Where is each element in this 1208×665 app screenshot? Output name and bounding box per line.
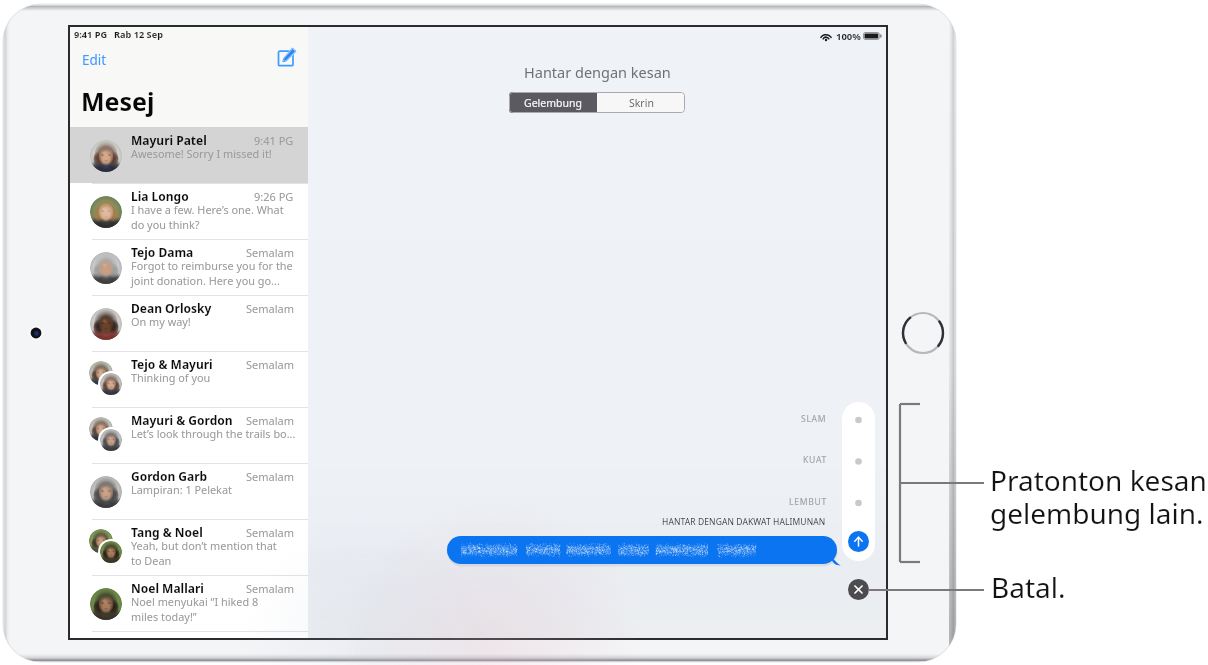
button[interactable]: Gordon Garb bbox=[70, 463, 308, 519]
staticText: joint donation. Here you go... bbox=[131, 273, 280, 288]
button[interactable]: Lia Longo bbox=[70, 183, 308, 239]
staticText: Tejo Dama bbox=[131, 244, 194, 260]
button[interactable]: Send bbox=[848, 531, 869, 552]
staticText: 100% bbox=[836, 30, 861, 43]
staticText: Batal. bbox=[991, 568, 1066, 606]
staticText: SLAM bbox=[801, 413, 827, 425]
staticText: Mayuri Patel bbox=[131, 132, 207, 148]
button[interactable]: Mayuri & Gordon bbox=[70, 407, 308, 463]
staticText: Dean Orlosky bbox=[131, 300, 212, 316]
staticText: Mesej bbox=[81, 84, 155, 118]
staticText: Thinking of you bbox=[131, 370, 211, 385]
staticText: Yeah, but don’t mention that bbox=[131, 538, 277, 553]
button[interactable]: Dean Orlosky bbox=[70, 295, 308, 351]
button[interactable]: Compose new message bbox=[277, 47, 299, 69]
staticText: Semalam bbox=[246, 469, 294, 484]
staticText: Lampiran: 1 Pelekat bbox=[131, 482, 232, 497]
button[interactable]: Tejo & Mayuri bbox=[70, 351, 308, 407]
staticText: Semalam bbox=[246, 357, 294, 372]
staticText: miles today!” bbox=[131, 609, 197, 624]
staticText: Tang & Noel bbox=[131, 524, 203, 540]
staticText: Noel menyukai “I hiked 8 bbox=[131, 594, 259, 609]
staticText: Rab 12 Sep bbox=[114, 28, 163, 41]
staticText: KUAT bbox=[803, 454, 827, 466]
button[interactable]: Mayuri Patel bbox=[70, 127, 308, 183]
button[interactable]: Gelembung bbox=[509, 92, 597, 113]
staticText: do you think? bbox=[131, 217, 200, 232]
staticText: 9:26 PG bbox=[254, 189, 294, 204]
button[interactable]: Tang & Noel bbox=[70, 519, 308, 575]
staticText: Semalam bbox=[246, 413, 294, 428]
staticText: Semalam bbox=[246, 525, 294, 540]
staticText: 9:41 PG bbox=[254, 133, 294, 148]
staticText: Hantar dengan kesan bbox=[524, 62, 671, 82]
button[interactable]: Edit bbox=[76, 47, 113, 73]
staticText: 9:41 PG bbox=[74, 28, 108, 41]
button[interactable]: Noel Mallari bbox=[70, 575, 308, 631]
staticText: Semalam bbox=[246, 301, 294, 316]
button[interactable]: Tejo Dama bbox=[70, 239, 308, 295]
staticText: Forgot to reimburse you for the bbox=[131, 258, 293, 273]
staticText: Gordon Garb bbox=[131, 468, 208, 484]
staticText: Lia Longo bbox=[131, 188, 189, 204]
staticText: Skrin bbox=[629, 96, 654, 110]
staticText: Mayuri & Gordon bbox=[131, 412, 233, 428]
staticText: Semalam bbox=[246, 245, 294, 260]
staticText: HANTAR DENGAN DAKWAT HALIMUNAN bbox=[662, 516, 826, 528]
staticText: Awesome! Sorry I missed it! bbox=[131, 146, 272, 161]
staticText: to Dean bbox=[131, 553, 172, 568]
staticText: Edit bbox=[82, 51, 107, 69]
button[interactable]: Cancel bbox=[848, 579, 869, 600]
staticText: Tejo & Mayuri bbox=[131, 356, 213, 372]
staticText: I have a few. Here’s one. What bbox=[131, 202, 284, 217]
staticText: Noel Mallari bbox=[131, 580, 204, 596]
staticText: On my way! bbox=[131, 314, 191, 329]
staticText: Semalam bbox=[246, 581, 294, 596]
button[interactable]: Skrin bbox=[597, 92, 685, 113]
staticText: LEMBUT bbox=[789, 496, 827, 508]
staticText: Let’s look through the trails bo... bbox=[131, 426, 294, 441]
staticText: Pratonton kesan gelembung lain. bbox=[990, 461, 1207, 532]
staticText: Gelembung bbox=[524, 96, 582, 110]
